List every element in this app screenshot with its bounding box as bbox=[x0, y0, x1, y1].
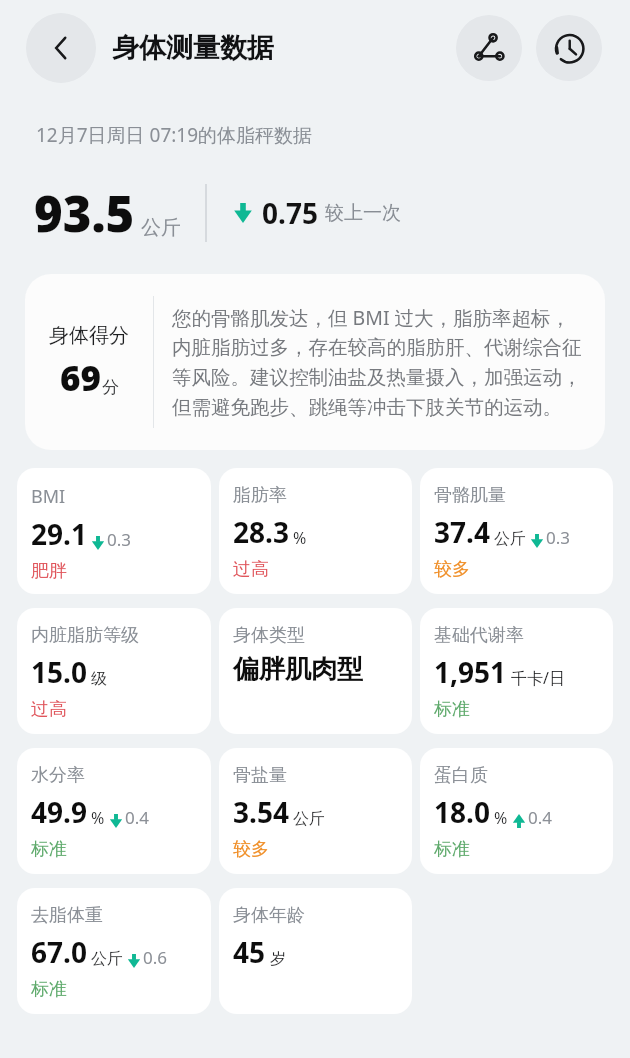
button[interactable]: 蛋白质 bbox=[420, 748, 613, 874]
staticText: 标准 bbox=[31, 978, 67, 1001]
staticText: 去脂体重 bbox=[31, 904, 103, 927]
button[interactable]: 骨骼肌量 bbox=[420, 468, 613, 594]
staticText: % bbox=[293, 527, 307, 549]
staticText: 12月7日周日 07:19的体脂秤数据 bbox=[36, 122, 313, 148]
staticText: 37.4 bbox=[434, 513, 490, 551]
staticText: 1,951 bbox=[434, 653, 507, 691]
staticText: 公斤 bbox=[293, 809, 325, 829]
staticText: 69 bbox=[60, 354, 102, 402]
staticText: 0.3 bbox=[546, 526, 571, 549]
button[interactable]: 脂肪率 bbox=[219, 468, 412, 594]
staticText: 公斤 bbox=[494, 529, 526, 549]
staticText: 0.4 bbox=[528, 806, 553, 829]
staticText: % bbox=[494, 807, 508, 829]
staticText: 身体类型 bbox=[233, 624, 305, 647]
button[interactable]: History bbox=[536, 15, 602, 81]
staticText: 公斤 bbox=[91, 949, 123, 969]
staticText: 15.0 bbox=[31, 653, 87, 691]
staticText: BMI bbox=[31, 484, 66, 509]
staticText: 身体年龄 bbox=[233, 904, 305, 927]
staticText: 偏胖肌肉型 bbox=[233, 653, 363, 686]
staticText: 较多 bbox=[233, 838, 269, 861]
staticText: 骨骼肌量 bbox=[434, 484, 506, 507]
staticText: 岁 bbox=[270, 949, 286, 969]
button[interactable]: 身体类型 bbox=[219, 608, 412, 734]
staticText: 29.1 bbox=[31, 515, 87, 553]
staticText: 18.0 bbox=[434, 793, 490, 831]
staticText: 过高 bbox=[31, 698, 67, 721]
staticText: 蛋白质 bbox=[434, 764, 488, 787]
button[interactable]: 身体得分 bbox=[25, 274, 605, 450]
staticText: 身体测量数据 bbox=[112, 31, 274, 65]
staticText: 49.9 bbox=[31, 793, 87, 831]
staticText: 0.6 bbox=[143, 946, 168, 969]
staticText: 身体得分 bbox=[49, 323, 129, 348]
button[interactable]: 水分率 bbox=[17, 748, 211, 874]
staticText: 骨盐量 bbox=[233, 764, 287, 787]
staticText: % bbox=[91, 807, 105, 829]
staticText: 45 bbox=[233, 933, 266, 971]
button[interactable]: 基础代谢率 bbox=[420, 608, 613, 734]
staticText: 分 bbox=[102, 377, 119, 398]
button[interactable]: 骨盐量 bbox=[219, 748, 412, 874]
staticText: 标准 bbox=[31, 838, 67, 861]
staticText: 67.0 bbox=[31, 933, 87, 971]
staticText: 水分率 bbox=[31, 764, 85, 787]
staticText: 级 bbox=[91, 669, 107, 689]
staticText: 基础代谢率 bbox=[434, 624, 524, 647]
staticText: 脂肪率 bbox=[233, 484, 287, 507]
staticText: 3.54 bbox=[233, 793, 289, 831]
staticText: 0.75 bbox=[262, 194, 318, 232]
staticText: 千卡/日 bbox=[511, 667, 565, 689]
staticText: 标准 bbox=[434, 838, 470, 861]
staticText: 标准 bbox=[434, 698, 470, 721]
button[interactable]: Share bbox=[456, 15, 522, 81]
staticText: 较多 bbox=[434, 558, 470, 581]
staticText: 0.4 bbox=[125, 806, 150, 829]
staticText: 28.3 bbox=[233, 513, 289, 551]
staticText: 肥胖 bbox=[31, 560, 67, 583]
staticText: 内脏脂肪等级 bbox=[31, 624, 139, 647]
staticText: 您的骨骼肌发达，但 BMI 过大，脂肪率超标，内脏脂肪过多，存在较高的脂肪肝、代… bbox=[172, 304, 589, 420]
button[interactable]: 身体年龄 bbox=[219, 888, 412, 1014]
staticText: 0.3 bbox=[107, 528, 132, 551]
staticText: 过高 bbox=[233, 558, 269, 581]
button[interactable]: Back bbox=[26, 13, 96, 83]
button[interactable]: 内脏脂肪等级 bbox=[17, 608, 211, 734]
staticText: 公斤 bbox=[141, 215, 181, 240]
staticText: 93.5 bbox=[34, 180, 135, 247]
button[interactable]: 去脂体重 bbox=[17, 888, 211, 1014]
staticText: 较上一次 bbox=[325, 201, 401, 225]
button[interactable]: BMI bbox=[17, 468, 211, 594]
